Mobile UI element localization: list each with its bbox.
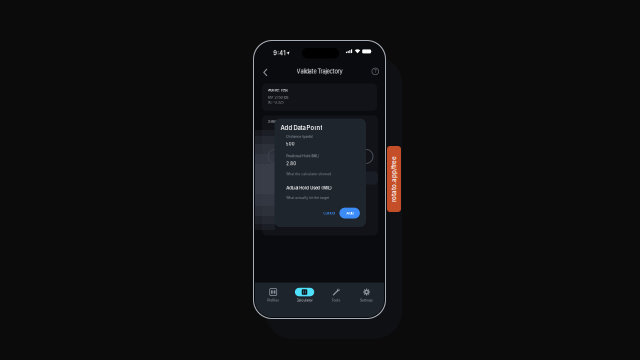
staticText: Cancel: [323, 211, 335, 215]
button[interactable]: Settings: [351, 288, 383, 303]
button[interactable]: Profiles: [257, 288, 289, 303]
staticText: 500: [286, 141, 295, 147]
staticText: Calculator: [296, 298, 312, 302]
staticText: What the calculator showed: [286, 172, 331, 176]
staticText: Profiles: [267, 298, 279, 302]
staticText: Add: [346, 211, 353, 215]
staticText: What actually hit the target: [286, 196, 329, 200]
staticText: Add Data Point: [280, 124, 322, 131]
staticText: 2.80: [286, 161, 296, 166]
staticText: 9:41: [273, 50, 285, 57]
staticText: BC: 0.325: [267, 100, 283, 104]
staticText: MV: 2750 fps: [267, 95, 288, 100]
button[interactable]: Add: [339, 208, 360, 218]
staticText: Distance (yards): [286, 134, 313, 139]
button[interactable]: Calculator: [288, 288, 320, 303]
button[interactable]: Cancel: [320, 208, 338, 218]
staticText: Data Points: [267, 119, 286, 124]
staticText: Validate Trajectory: [296, 68, 342, 75]
button[interactable]: Help: [368, 64, 382, 79]
button[interactable]: Back: [260, 65, 271, 80]
staticText: ?: [374, 68, 376, 74]
staticText: Settings: [360, 298, 373, 302]
staticText: Profile: Test: [267, 88, 287, 92]
staticText: Actual Hold Used (MIL): [286, 185, 332, 190]
button[interactable]: Tools: [320, 288, 352, 303]
staticText: Tools: [332, 298, 341, 302]
staticText: Predicted Hold (MIL): [286, 154, 319, 158]
staticText: rotato.app/free: [371, 175, 417, 183]
